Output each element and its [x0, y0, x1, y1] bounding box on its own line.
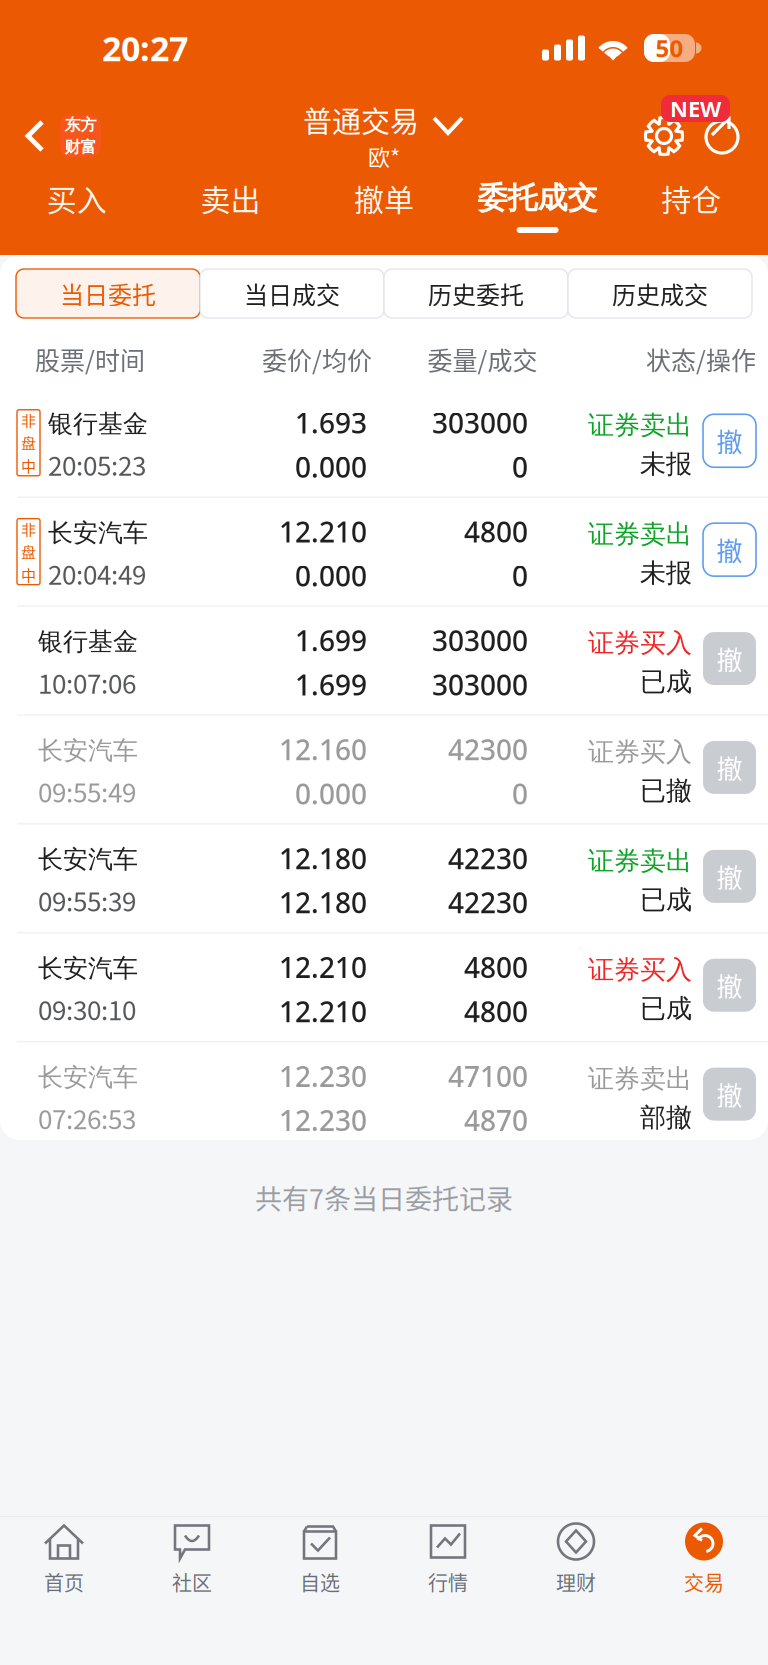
button[interactable]: 撤 [703, 523, 756, 576]
staticText: 交易 [684, 1567, 724, 1596]
button[interactable]: 撤单 [307, 176, 461, 259]
staticText: 4870 [464, 1101, 528, 1139]
staticText: 已成 [640, 992, 692, 1025]
button[interactable]: 撤 [703, 741, 756, 794]
staticText: 撤 [716, 640, 742, 677]
staticText: 303000 [432, 665, 528, 704]
staticText: 证券卖出 [588, 1062, 692, 1095]
staticText: 50 [655, 32, 683, 64]
staticText: 未报 [640, 557, 692, 589]
staticText: 中 [21, 455, 36, 476]
button[interactable]: 撤 [703, 632, 756, 685]
staticText: 盘 [21, 432, 36, 454]
staticText: 1.699 [295, 665, 367, 704]
button[interactable]: 撤 [703, 959, 756, 1012]
staticText: 委量/成交 [427, 341, 537, 377]
staticText: 历史成交 [612, 276, 708, 311]
staticText: 撤 [716, 422, 742, 459]
staticText: 0 [512, 774, 528, 813]
button[interactable]: 首页 [0, 1517, 128, 1604]
staticText: 非 [21, 409, 36, 431]
staticText: 委价/均价 [262, 341, 372, 377]
staticText: 1.699 [295, 621, 367, 659]
staticText: 303000 [432, 621, 528, 659]
button[interactable]: 返回 [0, 96, 140, 176]
staticText: 20:27 [102, 25, 188, 71]
staticText: 证券买入 [588, 627, 692, 660]
staticText: 撤 [716, 531, 742, 568]
button[interactable]: 撤 [703, 1068, 756, 1121]
staticText: 撤单 [354, 176, 414, 220]
staticText: 12.230 [279, 1057, 367, 1095]
staticText: 卖出 [200, 176, 260, 220]
staticText: 长安汽车 [38, 735, 138, 766]
staticText: 未报 [640, 448, 692, 481]
staticText: 12.160 [279, 730, 367, 768]
staticText: 盘 [21, 541, 36, 562]
staticText: 20:04:49 [48, 555, 146, 592]
staticText: 银行基金 [48, 408, 148, 440]
staticText: 已撤 [640, 774, 692, 807]
button[interactable]: 历史成交 [568, 269, 752, 318]
staticText: 0 [512, 448, 528, 486]
staticText: 证券卖出 [588, 409, 692, 442]
staticText: 证券买入 [588, 736, 692, 768]
button[interactable]: 当日委托 [16, 269, 200, 318]
button[interactable]: 委托成交 [461, 176, 614, 259]
staticText: 12.210 [279, 948, 367, 986]
button[interactable]: 理财 [512, 1517, 640, 1604]
staticText: 长安汽车 [38, 844, 138, 875]
staticText: 47100 [448, 1057, 528, 1095]
button[interactable]: 买入 [0, 176, 154, 259]
button[interactable]: 撤 [703, 850, 756, 903]
staticText: 长安汽车 [38, 1062, 138, 1093]
staticText: 20:05:23 [48, 446, 146, 483]
staticText: 证券卖出 [588, 518, 692, 551]
staticText: 持仓 [661, 176, 721, 220]
staticText: 部撤 [640, 1101, 692, 1134]
button[interactable]: 当日成交 [200, 269, 384, 318]
staticText: 已成 [640, 665, 692, 698]
staticText: 0 [512, 557, 528, 595]
staticText: 非 [21, 518, 36, 540]
staticText: 303000 [432, 404, 528, 442]
staticText: 证券卖出 [588, 845, 692, 877]
staticText: 撤 [716, 966, 742, 1004]
staticText: 1.693 [295, 404, 367, 442]
staticText: 历史委托 [428, 276, 524, 311]
staticText: 首页 [44, 1567, 84, 1596]
staticText: 东方 [64, 115, 96, 135]
staticText: 当日委托 [60, 276, 156, 311]
staticText: 已成 [640, 883, 692, 916]
staticText: 12.230 [279, 1101, 367, 1139]
button[interactable]: 历史委托 [384, 269, 568, 318]
staticText: 委托成交 [478, 179, 598, 217]
staticText: 09:55:39 [38, 881, 136, 919]
button[interactable]: 设置 [644, 96, 684, 176]
button[interactable]: 撤 [703, 414, 756, 467]
staticText: 行情 [428, 1567, 468, 1596]
staticText: 银行基金 [38, 626, 138, 657]
staticText: NEW [670, 93, 721, 123]
staticText: 状态/操作 [646, 341, 756, 377]
staticText: 0.000 [295, 557, 367, 595]
staticText: 42230 [448, 883, 528, 921]
button[interactable]: 卖出 [154, 176, 307, 259]
staticText: 撤 [716, 1075, 742, 1113]
staticText: 42300 [448, 730, 528, 768]
button[interactable]: 持仓 [614, 176, 768, 259]
button[interactable]: 交易 [640, 1517, 768, 1604]
button[interactable]: 刷新 [705, 96, 739, 176]
button[interactable]: 行情 [384, 1517, 512, 1604]
staticText: 10:07:06 [38, 663, 136, 701]
staticText: 社区 [172, 1567, 212, 1596]
staticText: 12.180 [279, 839, 367, 877]
button[interactable]: 社区 [128, 1517, 256, 1604]
button[interactable]: 自选 [256, 1517, 384, 1604]
staticText: 0.000 [295, 448, 367, 486]
staticText: 撤 [716, 857, 742, 895]
staticText: 12.210 [279, 992, 367, 1030]
staticText: 撤 [716, 749, 742, 786]
staticText: 共有7条当日委托记录 [255, 1178, 513, 1217]
staticText: 长安汽车 [48, 517, 148, 549]
